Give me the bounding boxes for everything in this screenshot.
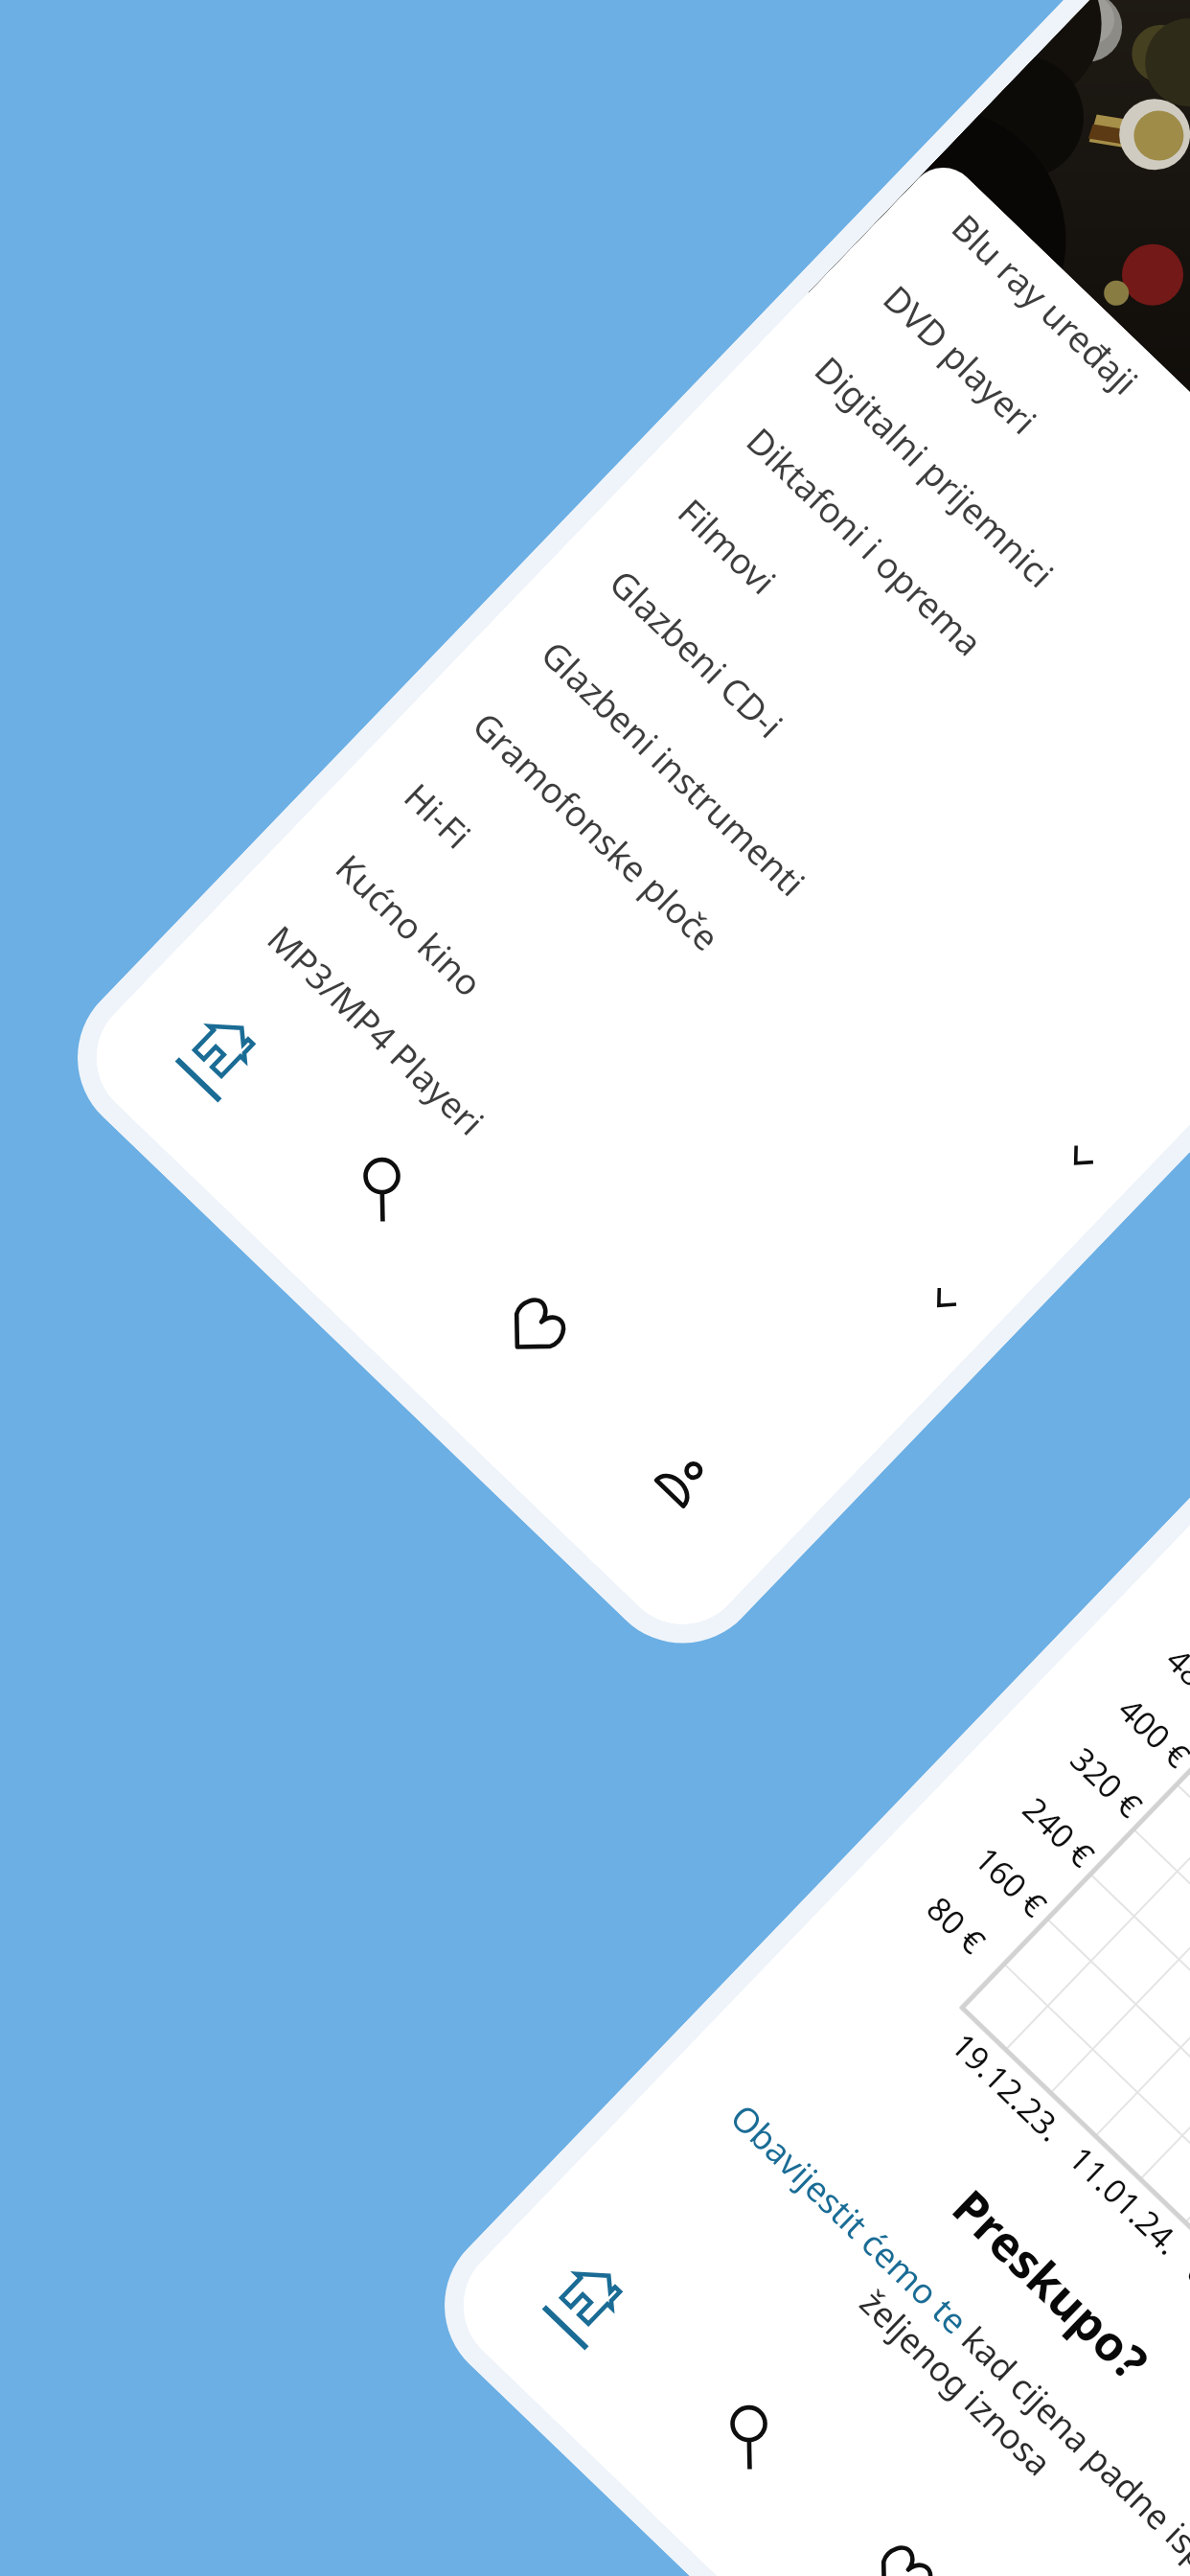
staticText: 19.12.23. 11.01.24. 03.02.24. 26.02.24. — [942, 2023, 1190, 2491]
staticText: Preskupo? — [721, 1965, 1190, 2576]
button[interactable]: Kućno kino — [267, 784, 950, 1446]
staticText: 400 € — [1109, 1688, 1190, 1777]
button[interactable]: Blu ray uređaji — [883, 153, 1190, 806]
button[interactable]: MP3/MP4 Playeri — [199, 855, 881, 1517]
button[interactable]: Home — [188, 1009, 261, 1082]
staticText: Obavijestit ćemo te kad cijena padne isp… — [669, 2073, 1190, 2576]
staticText: 240 € — [1014, 1787, 1104, 1877]
staticText: Digitalni prijemnici — [806, 345, 1065, 597]
staticText: Glazbeni instrumenti — [532, 630, 817, 906]
button[interactable]: Gramofonske ploče — [404, 642, 1086, 1304]
button[interactable]: Favorites — [499, 1292, 572, 1365]
button[interactable]: Hi-Fi — [336, 713, 1018, 1375]
button[interactable]: Filmovi — [609, 428, 1190, 1090]
button[interactable]: Favorites — [866, 2539, 939, 2576]
staticText: Diktafoni i oprema — [737, 416, 993, 665]
staticText: Blu ray uređaji — [943, 203, 1149, 404]
button[interactable]: Search — [346, 1150, 419, 1223]
button[interactable]: Home — [555, 2257, 628, 2330]
staticText: Hi-Fi — [395, 772, 482, 858]
button[interactable]: Glazbeni instrumenti — [473, 570, 1155, 1232]
staticText: 480 € — [1157, 1638, 1190, 1728]
staticText: Gramofonske ploče — [464, 701, 731, 961]
staticText: 320 € — [1062, 1737, 1152, 1827]
staticText: MP3/MP4 Playeri — [258, 914, 495, 1145]
button[interactable]: Digitalni prijemnici — [746, 286, 1190, 948]
staticText: 80 € — [918, 1887, 995, 1964]
button[interactable]: Search — [712, 2397, 786, 2471]
button[interactable]: Profile — [649, 1445, 716, 1513]
staticText: 160 € — [966, 1837, 1057, 1926]
button[interactable]: DVD playeri — [815, 215, 1190, 877]
staticText: DVD playeri — [874, 274, 1048, 444]
staticText: Glazbeni CD-i — [600, 559, 794, 748]
staticText: Kućno kino — [327, 843, 493, 1006]
button[interactable]: Glazbeni CD-i — [541, 499, 1190, 1161]
staticText: Filmovi — [669, 487, 787, 604]
button[interactable]: Diktafoni i oprema — [678, 357, 1190, 1019]
